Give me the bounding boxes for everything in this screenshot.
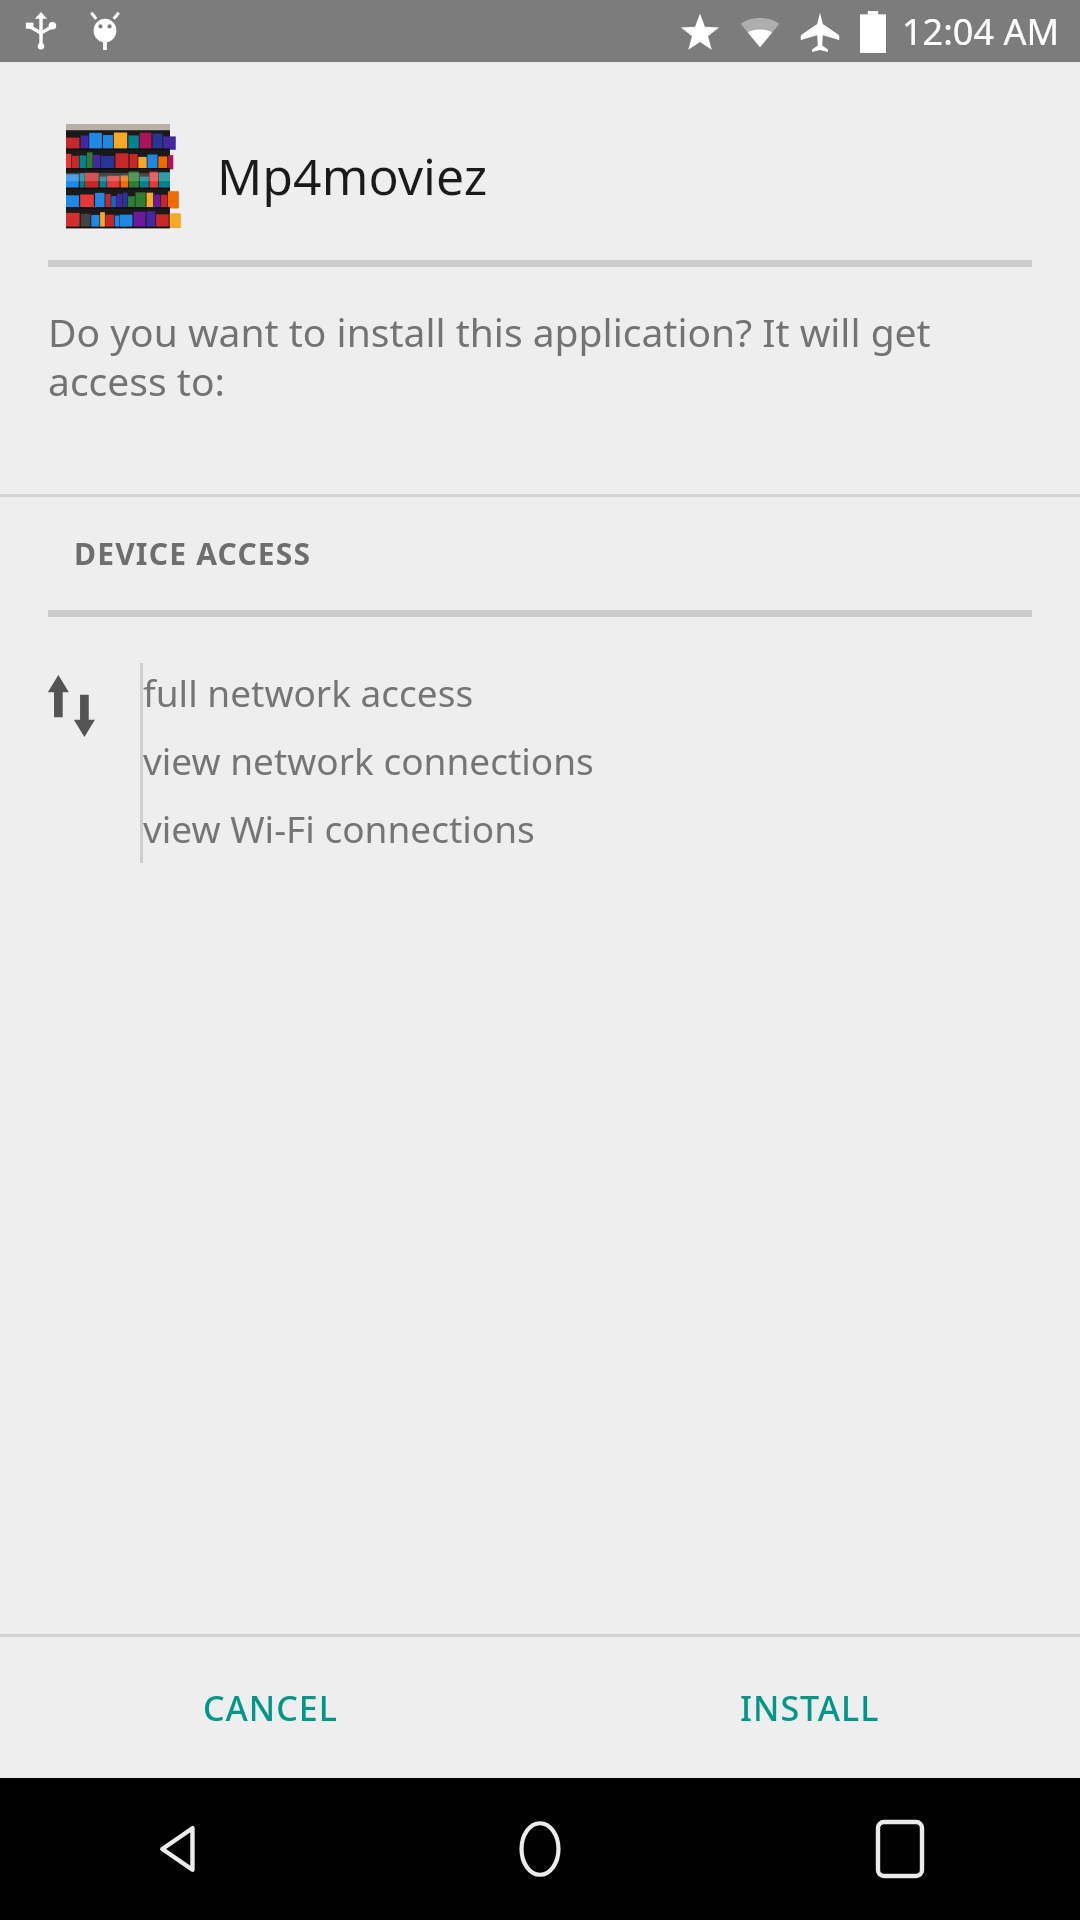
button[interactable]: CANCEL <box>0 1637 540 1778</box>
button[interactable]: Recent apps <box>720 1778 1080 1920</box>
staticText: full network access <box>143 667 474 717</box>
other: Network access <box>41 675 103 737</box>
button[interactable]: Back <box>0 1778 360 1920</box>
button[interactable]: INSTALL <box>540 1637 1080 1778</box>
staticText: view network connections <box>143 735 594 785</box>
button[interactable]: Home <box>360 1778 720 1920</box>
staticText: 12:04 AM <box>902 7 1060 56</box>
staticText: Mp4moviez <box>217 142 488 210</box>
staticText: Do you want to install this application?… <box>48 305 1032 408</box>
staticText: view Wi-Fi connections <box>143 803 535 853</box>
staticText: INSTALL <box>740 1685 880 1731</box>
staticText: DEVICE ACCESS <box>74 533 312 574</box>
staticText: CANCEL <box>203 1685 338 1731</box>
